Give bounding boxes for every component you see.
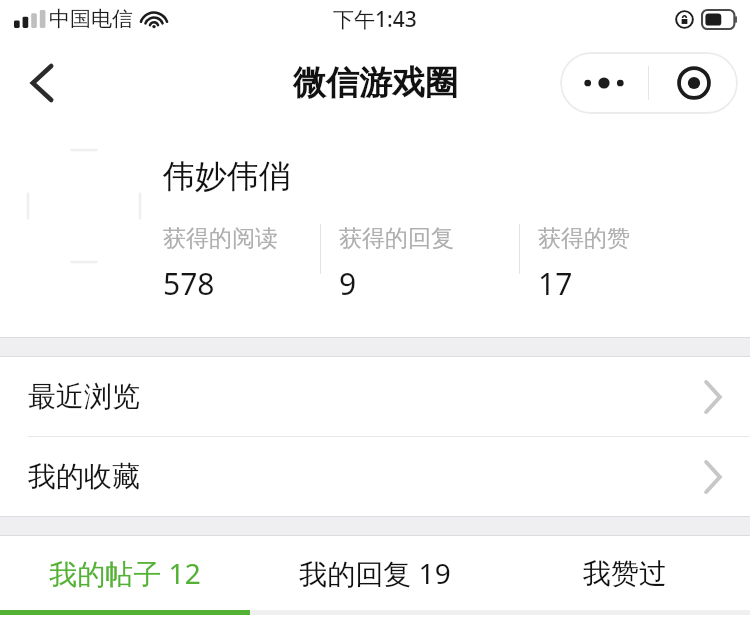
staticText: 578 [163,263,215,304]
button[interactable]: More options [560,52,648,114]
staticText: 17 [538,263,573,304]
button[interactable]: 最近浏览 [0,357,750,436]
staticText: 获得的阅读 [163,224,278,253]
staticText: 获得的赞 [538,224,630,253]
staticText: 我赞过 [583,556,667,591]
button[interactable]: 我的回复 19 [250,536,500,610]
staticText: 获得的回复 [339,224,454,253]
staticText: 中国电信 [49,6,133,32]
button[interactable]: Back [16,57,68,109]
staticText: 我的回复 19 [299,554,451,592]
staticText: 微信游戏圈 [293,62,458,104]
staticText: 我的收藏 [28,459,704,494]
button[interactable]: 我的帖子 12 [0,536,250,610]
staticText: 下午1:43 [333,5,417,34]
staticText: 伟妙伟俏 [163,156,291,196]
staticText: 9 [339,263,357,304]
button[interactable]: 我的收藏 [0,437,750,516]
staticText: 最近浏览 [28,379,704,414]
button[interactable]: Close mini program [649,52,738,114]
button[interactable]: 我赞过 [500,536,750,610]
staticText: 我的帖子 12 [49,554,201,592]
